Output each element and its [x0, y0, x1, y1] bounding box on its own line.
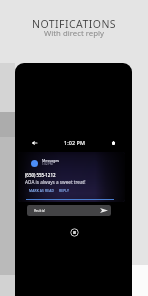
button[interactable]: Yes it is! [27, 205, 111, 216]
staticText: Yes it is! [34, 209, 46, 213]
staticText: 1:02 PM [42, 162, 53, 166]
staticText: With direct reply [44, 28, 105, 39]
button[interactable]: Assistant [70, 228, 79, 237]
button[interactable]: Send [99, 206, 108, 215]
button[interactable]: Back [29, 137, 40, 148]
button[interactable]: Messages [18, 152, 125, 202]
button[interactable]: REPLY [59, 188, 70, 192]
staticText: 1:02 PM [64, 139, 86, 146]
staticText: AOA is always a sweet treat! [25, 179, 86, 185]
button[interactable]: MARK AS READ [29, 188, 54, 192]
staticText: (650) 555-1212 [25, 172, 56, 178]
staticText: Messages [42, 158, 60, 163]
staticText: NOTIFICATIONS [32, 17, 117, 31]
